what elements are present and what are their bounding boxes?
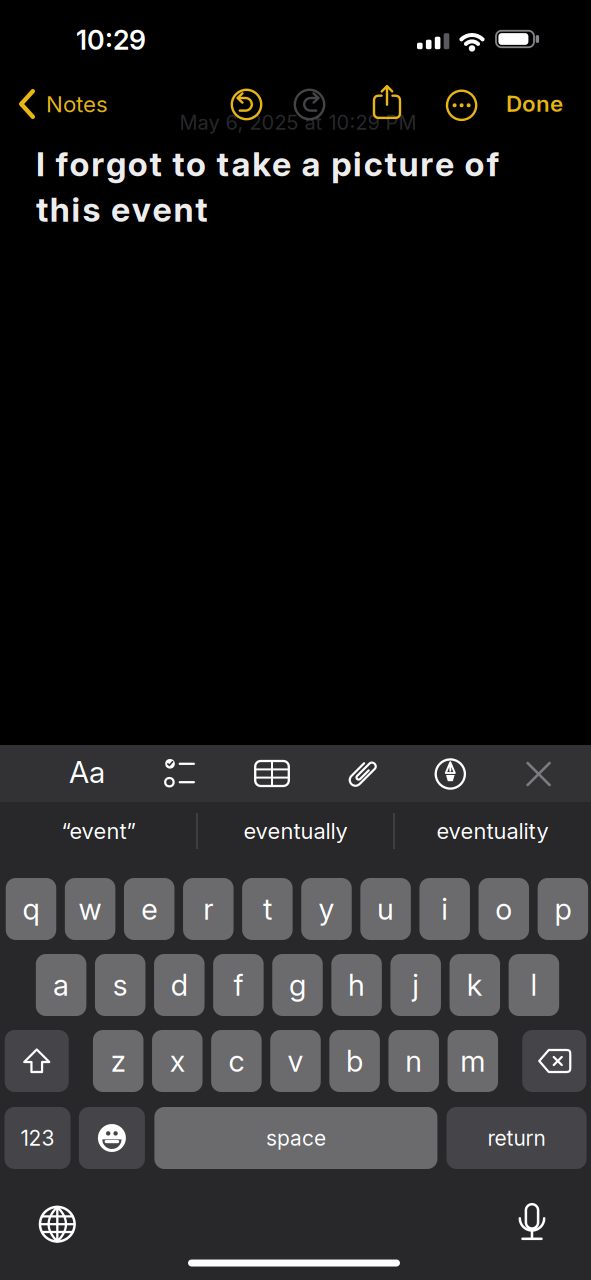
button[interactable]: space <box>154 1107 437 1169</box>
button[interactable]: “event” <box>3 803 193 859</box>
staticText: I forgot to take a picture of <box>36 144 499 184</box>
staticText: g <box>289 967 306 1003</box>
button[interactable]: Checklist <box>160 756 198 790</box>
staticText: y <box>318 891 334 927</box>
staticText: x <box>170 1043 185 1079</box>
button[interactable]: Dictate <box>515 1201 549 1245</box>
staticText: j <box>412 967 419 1003</box>
staticText: n <box>405 1043 422 1079</box>
button[interactable]: r <box>183 878 234 940</box>
staticText: f <box>233 967 243 1003</box>
staticText: l <box>530 967 537 1003</box>
staticText: a <box>53 967 69 1003</box>
staticText: Done <box>506 90 563 117</box>
button[interactable]: Next keyboard <box>38 1205 76 1243</box>
staticText: eventually <box>243 818 347 844</box>
staticText: “event” <box>61 818 135 844</box>
button[interactable]: m <box>448 1030 498 1092</box>
button[interactable]: a <box>36 954 86 1016</box>
staticText: i <box>441 891 448 927</box>
button[interactable]: Shift <box>5 1030 69 1092</box>
button[interactable]: i <box>419 878 470 940</box>
staticText: 123 <box>20 1125 54 1151</box>
button[interactable]: Markup <box>432 756 468 792</box>
staticText: b <box>346 1043 363 1079</box>
button[interactable]: return <box>446 1107 586 1169</box>
staticText: q <box>22 891 39 927</box>
button[interactable]: Undo <box>228 86 264 122</box>
button[interactable]: x <box>152 1030 203 1092</box>
button[interactable]: d <box>154 954 205 1016</box>
button[interactable]: b <box>329 1030 380 1092</box>
staticText: z <box>111 1043 126 1079</box>
button[interactable]: Table <box>253 758 291 788</box>
button[interactable]: n <box>388 1030 439 1092</box>
staticText: o <box>495 891 512 927</box>
button[interactable]: f <box>213 954 264 1016</box>
button[interactable]: h <box>331 954 382 1016</box>
button[interactable]: eventually <box>200 803 390 859</box>
staticText: p <box>554 891 571 927</box>
button[interactable]: Attach <box>344 755 380 791</box>
staticText: space <box>266 1125 326 1151</box>
button[interactable]: z <box>93 1030 143 1092</box>
button[interactable]: e <box>124 878 174 940</box>
staticText: s <box>113 967 128 1003</box>
staticText: w <box>79 891 102 927</box>
staticText: r <box>203 891 213 927</box>
button[interactable]: s <box>95 954 145 1016</box>
staticText: u <box>377 891 394 927</box>
button[interactable]: Done <box>506 90 563 117</box>
button[interactable]: k <box>450 954 500 1016</box>
staticText: return <box>487 1125 545 1151</box>
button[interactable]: Dismiss keyboard <box>524 759 554 789</box>
button[interactable]: Emoji <box>79 1107 145 1169</box>
button[interactable]: Format <box>69 754 105 790</box>
staticText: Aa <box>69 754 105 790</box>
staticText: Notes <box>46 90 108 118</box>
button[interactable]: v <box>270 1030 321 1092</box>
button[interactable]: q <box>6 878 56 940</box>
staticText: c <box>228 1043 244 1079</box>
button[interactable]: Share <box>370 82 404 122</box>
staticText: e <box>141 891 157 927</box>
button[interactable]: y <box>301 878 352 940</box>
button[interactable]: eventuality <box>397 803 587 859</box>
button[interactable]: w <box>65 878 115 940</box>
button[interactable]: More <box>444 87 480 123</box>
staticText: May 6, 2025 at 10:29 PM <box>179 110 416 135</box>
button[interactable]: p <box>538 878 588 940</box>
staticText: v <box>287 1043 303 1079</box>
staticText: eventuality <box>436 818 548 844</box>
staticText: d <box>171 967 188 1003</box>
button[interactable]: t <box>242 878 293 940</box>
staticText: h <box>348 967 365 1003</box>
button[interactable]: Notes <box>17 84 137 124</box>
button[interactable]: j <box>390 954 441 1016</box>
staticText: m <box>460 1043 485 1079</box>
button[interactable]: 123 <box>4 1107 70 1169</box>
button[interactable]: c <box>211 1030 262 1092</box>
staticText: t <box>263 891 272 927</box>
button[interactable]: l <box>509 954 559 1016</box>
staticText: k <box>467 967 483 1003</box>
button[interactable]: Redo <box>291 86 327 122</box>
button[interactable]: g <box>272 954 323 1016</box>
staticText: 10:29 <box>76 24 146 56</box>
staticText: this event <box>36 189 207 230</box>
button[interactable]: u <box>360 878 411 940</box>
button[interactable]: o <box>479 878 529 940</box>
button[interactable]: Delete <box>522 1030 586 1092</box>
